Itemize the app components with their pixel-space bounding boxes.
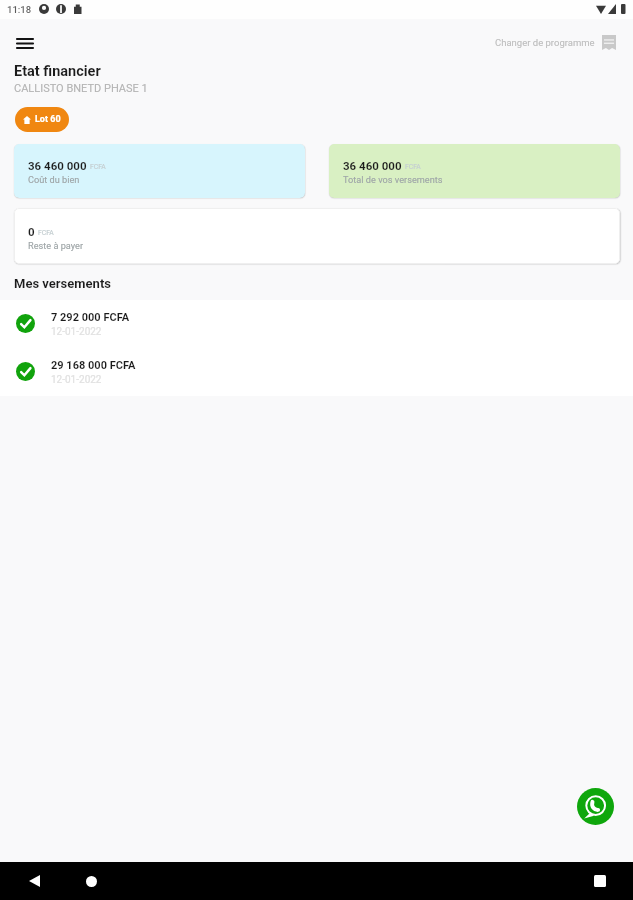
button[interactable]: WhatsApp <box>577 788 614 825</box>
staticText: 36 460 000 <box>28 159 87 172</box>
button[interactable]: 7 292 000 FCFA <box>0 300 633 348</box>
staticText: 0 <box>28 225 35 238</box>
staticText: 12-01-2022 <box>51 326 102 338</box>
staticText: Coût du bien <box>28 174 80 185</box>
button[interactable]: Recents <box>588 869 612 893</box>
button[interactable]: Home <box>79 869 103 893</box>
staticText: 12-01-2022 <box>51 374 102 386</box>
staticText: Mes versements <box>14 276 111 291</box>
staticText: Etat financier <box>14 63 101 80</box>
button[interactable]: 0 <box>14 208 620 264</box>
staticText: Reste à payer <box>28 240 84 251</box>
button[interactable]: 36 460 000 <box>14 144 305 198</box>
staticText: 11:18 <box>7 4 32 15</box>
staticText: FCFA <box>90 163 106 171</box>
button[interactable]: Lot 60 <box>15 107 69 132</box>
staticText: 36 460 000 <box>343 159 402 172</box>
staticText: CALLISTO BNETD PHASE 1 <box>14 82 148 95</box>
staticText: FCFA <box>405 163 421 171</box>
button[interactable]: Back <box>22 869 46 893</box>
button[interactable]: Menu <box>10 28 40 58</box>
staticText: Total de vos versements <box>343 174 443 185</box>
staticText: 7 292 000 FCFA <box>51 311 130 324</box>
button[interactable]: 29 168 000 FCFA <box>0 348 633 396</box>
staticText: FCFA <box>38 229 54 237</box>
button[interactable]: 36 460 000 <box>329 144 620 198</box>
staticText: Changer de programme <box>495 37 595 48</box>
staticText: Lot 60 <box>35 114 61 125</box>
button[interactable]: Changer de programme <box>491 31 620 54</box>
staticText: 29 168 000 FCFA <box>51 359 136 372</box>
